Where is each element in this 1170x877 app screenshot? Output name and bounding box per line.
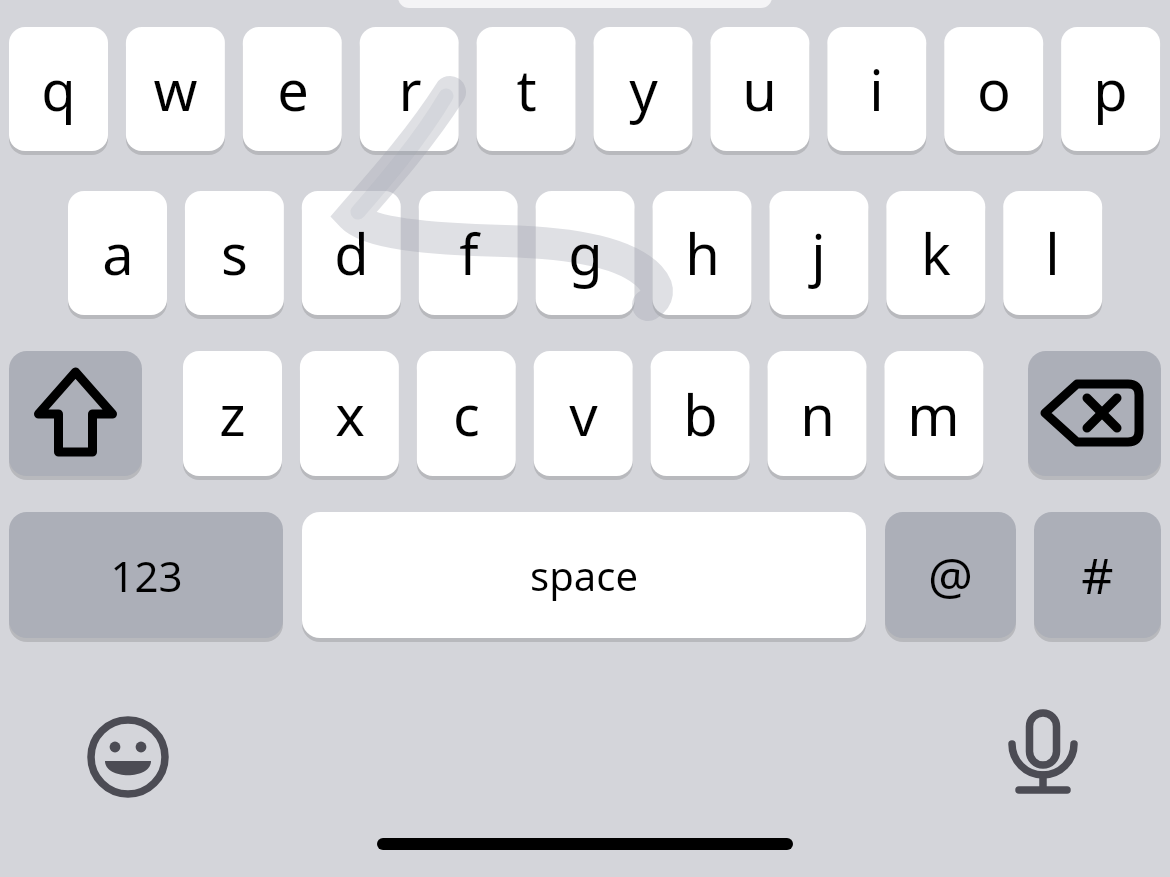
button[interactable]: space <box>302 512 866 638</box>
staticText: w <box>153 51 198 127</box>
staticText: u <box>742 51 777 127</box>
button[interactable]: q <box>9 27 108 151</box>
button[interactable]: w <box>126 27 225 151</box>
button[interactable]: h <box>653 191 752 315</box>
staticText: 123 <box>110 547 183 604</box>
staticText: b <box>683 376 718 452</box>
button[interactable]: v <box>534 351 633 476</box>
button[interactable]: @ <box>885 512 1016 638</box>
button[interactable]: i <box>827 27 926 151</box>
button[interactable]: n <box>768 351 867 476</box>
button[interactable]: d <box>302 191 401 315</box>
staticText: m <box>907 376 960 452</box>
button[interactable]: Shift <box>9 351 142 476</box>
staticText: x <box>335 376 365 452</box>
staticText: o <box>977 51 1011 127</box>
button[interactable]: t <box>477 27 576 151</box>
button[interactable]: e <box>243 27 342 151</box>
staticText: space <box>530 548 638 602</box>
button[interactable]: s <box>185 191 284 315</box>
button[interactable]: z <box>183 351 282 476</box>
staticText: g <box>568 215 603 291</box>
button[interactable]: g <box>536 191 635 315</box>
button[interactable]: y <box>594 27 693 151</box>
button[interactable]: u <box>710 27 809 151</box>
button[interactable]: j <box>769 191 868 315</box>
staticText: i <box>869 51 884 127</box>
button[interactable]: f <box>419 191 518 315</box>
staticText: z <box>219 376 246 452</box>
staticText: # <box>1081 541 1114 609</box>
staticText: f <box>459 215 479 291</box>
staticText: c <box>453 376 480 452</box>
button[interactable]: r <box>360 27 459 151</box>
button[interactable]: o <box>944 27 1043 151</box>
staticText: d <box>334 215 369 291</box>
staticText: k <box>921 215 951 291</box>
staticText: v <box>569 376 598 452</box>
staticText: a <box>102 215 134 291</box>
staticText: n <box>800 376 835 452</box>
staticText: p <box>1093 51 1128 127</box>
staticText: t <box>516 51 537 127</box>
button[interactable]: 123 <box>9 512 283 638</box>
button[interactable]: # <box>1034 512 1161 638</box>
button[interactable]: Backspace <box>1028 351 1161 476</box>
button[interactable]: k <box>886 191 985 315</box>
button[interactable]: c <box>417 351 516 476</box>
button[interactable]: m <box>884 351 983 476</box>
button[interactable]: a <box>68 191 167 315</box>
staticText: y <box>629 51 658 127</box>
staticText: e <box>277 51 309 127</box>
staticText: r <box>398 51 422 127</box>
staticText: @ <box>928 541 973 609</box>
button[interactable]: p <box>1061 27 1160 151</box>
button[interactable]: l <box>1003 191 1102 315</box>
staticText: s <box>221 215 248 291</box>
staticText: q <box>41 51 76 127</box>
staticText: h <box>685 215 720 291</box>
button[interactable]: b <box>651 351 750 476</box>
staticText: l <box>1045 215 1060 291</box>
staticText: j <box>811 215 826 291</box>
button[interactable]: Emoji keyboard <box>78 707 178 807</box>
button[interactable]: Voice dictation <box>993 707 1093 807</box>
button[interactable]: x <box>300 351 399 476</box>
